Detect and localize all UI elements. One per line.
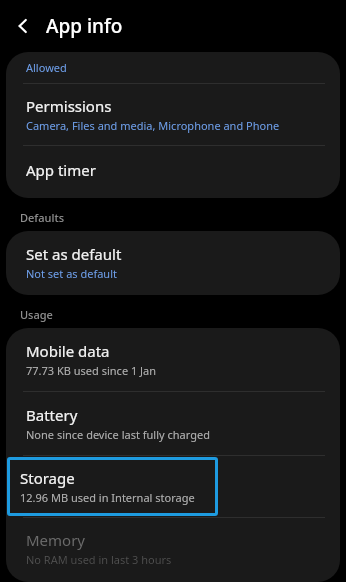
staticText: Permissions bbox=[26, 96, 112, 116]
button[interactable]: App timer bbox=[6, 146, 340, 198]
button[interactable]: Back bbox=[0, 0, 46, 52]
staticText: No RAM used in last 3 hours bbox=[26, 552, 172, 564]
button[interactable]: Permissions bbox=[6, 84, 340, 145]
staticText: Battery bbox=[26, 405, 78, 425]
staticText: Usage bbox=[20, 307, 53, 322]
staticText: 77.73 KB used since 1 Jan bbox=[26, 363, 157, 378]
staticText: None since device last fully charged bbox=[26, 427, 210, 442]
button[interactable]: Storage bbox=[7, 457, 218, 516]
staticText: Defaults bbox=[20, 210, 64, 225]
staticText: Storage bbox=[20, 468, 75, 488]
staticText: Mobile data bbox=[26, 341, 110, 361]
staticText: Set as default bbox=[26, 244, 122, 264]
staticText: 12.96 MB used in Internal storage bbox=[20, 490, 195, 505]
button[interactable]: Mobile data bbox=[6, 328, 340, 391]
button[interactable]: Memory bbox=[6, 518, 340, 582]
staticText: Not set as default bbox=[26, 266, 117, 281]
staticText: Camera, Files and media, Microphone and … bbox=[26, 118, 280, 133]
staticText: Memory bbox=[26, 530, 86, 550]
staticText: App timer bbox=[26, 160, 96, 180]
staticText: App info bbox=[46, 13, 123, 39]
button[interactable]: Battery bbox=[6, 392, 340, 455]
staticText: Allowed bbox=[26, 60, 67, 75]
button[interactable]: Set as default bbox=[6, 231, 340, 295]
